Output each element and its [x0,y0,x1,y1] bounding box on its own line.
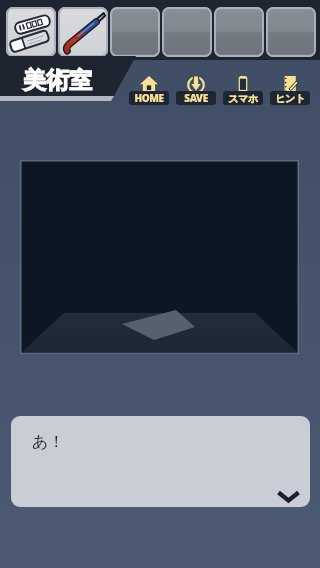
button[interactable]: Item slot 4 [162,7,212,57]
button[interactable]: ヒント [270,75,310,105]
staticText: 美術室 [23,66,92,95]
button[interactable]: Item slot 2 [58,7,108,57]
staticText: スマホ [228,92,258,105]
staticText: ヒント [275,92,305,105]
staticText: HOME [134,91,164,105]
button[interactable]: Item slot 1 [6,7,56,57]
staticText: SAVE [184,91,208,105]
button[interactable]: SAVE [176,75,216,105]
button[interactable]: あ！ [11,416,310,507]
button[interactable]: Item slot 6 [266,7,316,57]
button[interactable]: Item slot 3 [110,7,160,57]
button[interactable]: HOME [129,75,169,105]
button[interactable]: スマホ [223,75,263,105]
staticText: あ！ [32,432,65,452]
button[interactable]: Item slot 5 [214,7,264,57]
